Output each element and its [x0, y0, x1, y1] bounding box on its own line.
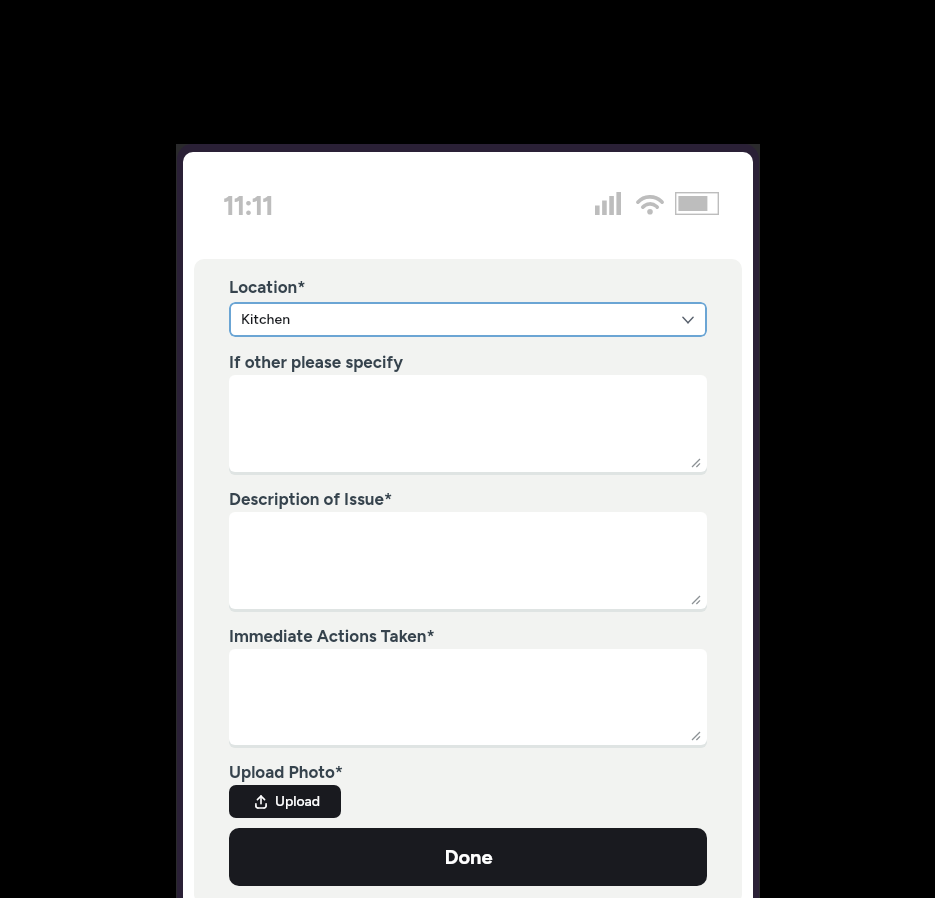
button[interactable]: Upload [229, 785, 341, 818]
staticText: Done [444, 845, 493, 869]
staticText: Upload Photo* [229, 762, 344, 782]
staticText: Description of Issue* [229, 489, 393, 509]
staticText: Location* [229, 277, 306, 297]
staticText: Upload [275, 793, 320, 810]
staticText: Immediate Actions Taken* [229, 626, 435, 646]
button[interactable]: Done [229, 828, 707, 886]
staticText: Kitchen [241, 311, 291, 328]
staticText: If other please specify [229, 352, 403, 372]
staticText: 11:11 [223, 188, 273, 222]
button[interactable]: Kitchen [229, 302, 707, 337]
